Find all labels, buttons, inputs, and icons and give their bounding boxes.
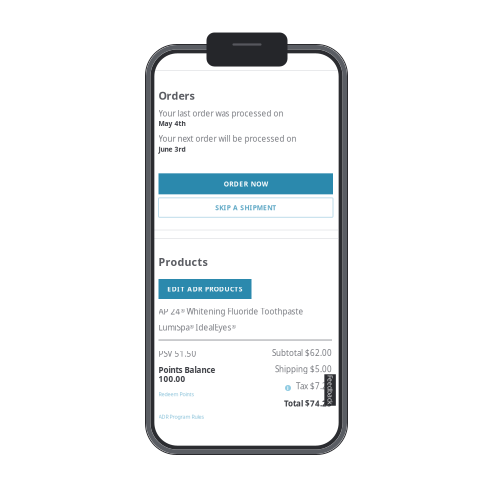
staticText: Orders [158, 88, 194, 103]
staticText: Redeem Points [158, 391, 194, 398]
staticText: Points Balance [158, 365, 215, 375]
staticText: AP 24® Whitening Fluoride Toothpaste [158, 306, 303, 317]
staticText: Your next order will be processed on [158, 133, 296, 144]
staticText: Subtotal $62.00 [272, 348, 332, 358]
staticText: 100.00 [158, 373, 185, 384]
button[interactable]: EDIT ADR PRODUCTS [158, 279, 251, 299]
staticText: Shipping $5.00 [275, 364, 332, 374]
staticText: i [287, 384, 289, 392]
staticText: Feedback [315, 386, 345, 394]
staticText: May 4th [158, 119, 185, 128]
button[interactable]: Redeem Points [158, 391, 228, 398]
button[interactable]: ADR Program Rules [158, 413, 228, 420]
staticText: ADR Program Rules [158, 413, 204, 420]
staticText: Tax $7.25 [296, 381, 332, 391]
staticText: PSV 51.50 [158, 348, 196, 359]
staticText: SKIP A SHIPMENT [215, 203, 276, 212]
staticText: Total $74.25 [284, 398, 332, 409]
button[interactable]: SKIP A SHIPMENT [158, 198, 333, 217]
staticText: Products [158, 255, 207, 269]
staticText: June 3rd [158, 145, 185, 154]
staticText: LumiSpa® IdealEyes® [158, 322, 235, 333]
staticText: Your last order was processed on [158, 108, 283, 119]
staticText: EDIT ADR PRODUCTS [167, 285, 243, 293]
button[interactable]: ORDER NOW [158, 173, 333, 194]
button[interactable]: Feedback [324, 374, 336, 406]
staticText: ORDER NOW [224, 179, 268, 188]
